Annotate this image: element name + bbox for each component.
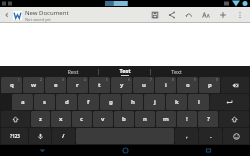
button[interactable]: Home xyxy=(84,145,167,156)
button[interactable]: Add xyxy=(214,7,231,23)
staticText: 4 xyxy=(84,78,86,82)
button[interactable]: . xyxy=(199,128,222,144)
button[interactable]: s xyxy=(34,94,55,110)
staticText: u xyxy=(142,81,146,89)
button[interactable]: Shift xyxy=(1,111,30,127)
staticText: Rest xyxy=(67,68,79,75)
staticText: 8 xyxy=(172,78,174,82)
staticText: s xyxy=(43,98,47,106)
staticText: y xyxy=(120,81,124,89)
button[interactable]: / xyxy=(52,128,75,144)
staticText: h xyxy=(131,98,135,106)
staticText: a xyxy=(21,98,25,106)
staticText: 3 xyxy=(62,78,64,82)
staticText: n xyxy=(143,115,147,123)
staticText: . xyxy=(210,132,212,140)
staticText: , xyxy=(186,132,188,140)
button[interactable]: Backspace xyxy=(221,77,249,93)
button[interactable]: Save xyxy=(146,7,163,23)
button[interactable]: z xyxy=(31,111,50,127)
button[interactable]: w xyxy=(23,77,44,93)
button[interactable]: g xyxy=(100,94,121,110)
staticText: Test xyxy=(119,67,131,74)
staticText: ?123 xyxy=(10,133,20,139)
button[interactable]: l xyxy=(188,94,209,110)
staticText: b xyxy=(122,115,126,123)
staticText: w xyxy=(31,81,37,89)
staticText: / xyxy=(62,132,65,140)
staticText: i xyxy=(165,81,167,89)
button[interactable]: ?123 xyxy=(1,128,28,144)
staticText: ? xyxy=(207,115,210,123)
staticText: ! xyxy=(186,115,188,123)
button[interactable]: n xyxy=(135,111,155,127)
button[interactable]: Recent apps xyxy=(167,145,250,156)
button[interactable]: , xyxy=(175,128,198,144)
button[interactable]: k xyxy=(166,94,187,110)
staticText: New Document xyxy=(25,9,69,17)
button[interactable]: Rest xyxy=(47,66,98,77)
staticText: p xyxy=(208,81,212,89)
button[interactable]: Format text xyxy=(197,7,214,23)
staticText: o xyxy=(186,81,190,89)
button[interactable]: t xyxy=(89,77,110,93)
button[interactable]: o xyxy=(177,77,198,93)
staticText: 9 xyxy=(194,78,196,82)
staticText: f xyxy=(87,98,90,106)
button[interactable]: a xyxy=(12,94,33,110)
button[interactable]: Test xyxy=(99,66,150,77)
button[interactable]: j xyxy=(144,94,165,110)
button[interactable]: Text xyxy=(151,66,202,77)
staticText: e xyxy=(54,81,58,89)
button[interactable]: ? xyxy=(198,111,218,127)
staticText: Text xyxy=(171,68,182,75)
button[interactable]: ! xyxy=(177,111,197,127)
button[interactable]: v xyxy=(93,111,113,127)
button[interactable]: r xyxy=(67,77,88,93)
button[interactable]: h xyxy=(122,94,143,110)
button[interactable]: Back xyxy=(2,10,12,20)
button[interactable]: b xyxy=(114,111,134,127)
staticText: r xyxy=(76,81,79,89)
button[interactable]: Shift xyxy=(219,111,249,127)
staticText: 5 xyxy=(106,78,108,82)
staticText: k xyxy=(175,98,179,106)
staticText: Not saved yet xyxy=(25,17,51,22)
button[interactable]: m xyxy=(156,111,176,127)
button[interactable]: Voice input xyxy=(29,128,51,144)
button[interactable]: Enter xyxy=(210,94,249,110)
staticText: 6 xyxy=(128,78,130,82)
staticText: q xyxy=(10,81,14,89)
button[interactable]: Emoji xyxy=(223,128,249,144)
staticText: g xyxy=(109,98,113,106)
button[interactable]: q xyxy=(1,77,22,93)
button[interactable]: i xyxy=(155,77,176,93)
staticText: x xyxy=(59,115,63,123)
button[interactable]: Back xyxy=(0,145,84,156)
staticText: 1 xyxy=(18,78,20,82)
button[interactable]: Share xyxy=(163,7,180,23)
button[interactable]: x xyxy=(51,111,71,127)
button[interactable]: Undo xyxy=(180,7,197,23)
staticText: j xyxy=(154,98,156,106)
staticText: c xyxy=(80,115,84,123)
button[interactable]: y xyxy=(111,77,132,93)
button[interactable]: p xyxy=(199,77,220,93)
button[interactable]: More options xyxy=(231,7,248,23)
staticText: z xyxy=(39,115,42,123)
button[interactable]: f xyxy=(78,94,99,110)
button[interactable]: u xyxy=(133,77,154,93)
button[interactable]: e xyxy=(45,77,66,93)
button[interactable]: d xyxy=(56,94,77,110)
staticText: v xyxy=(101,115,105,123)
staticText: l xyxy=(198,98,200,106)
staticText: 0 xyxy=(216,78,218,82)
button[interactable]: c xyxy=(72,111,92,127)
staticText: m xyxy=(163,115,169,123)
staticText: t xyxy=(98,81,101,89)
staticText: d xyxy=(65,98,69,106)
staticText: 2 xyxy=(40,78,42,82)
staticText: 7 xyxy=(150,78,152,82)
